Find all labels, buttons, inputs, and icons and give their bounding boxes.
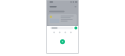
button[interactable]: Audio — [64, 31, 66, 33]
button[interactable]: Send — [74, 27, 77, 29]
button[interactable]: Camera — [53, 31, 55, 33]
button[interactable]: Shared link preview — [48, 14, 77, 26]
button[interactable]: More — [70, 31, 72, 33]
button[interactable]: Photos — [59, 31, 61, 33]
button[interactable]: Record voice message — [60, 39, 65, 44]
button[interactable]: New message — [74, 6, 76, 7]
